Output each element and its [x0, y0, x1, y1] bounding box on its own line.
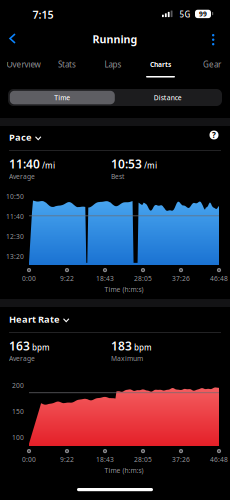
staticText: 9:22	[60, 455, 74, 464]
button[interactable]: Overview	[0, 58, 46, 78]
staticText: 0:00	[22, 455, 36, 464]
staticText: 10:53	[111, 156, 142, 172]
button[interactable]: Heart Rate	[9, 313, 69, 325]
button[interactable]: Stats	[44, 58, 90, 78]
staticText: /mi	[144, 160, 157, 171]
staticText: Average	[9, 172, 35, 181]
staticText: 100	[12, 433, 24, 442]
staticText: Maximum	[111, 354, 143, 363]
staticText: 10:50	[6, 192, 24, 201]
staticText: bpm	[32, 342, 50, 353]
staticText: Overview	[6, 59, 40, 70]
staticText: 18:43	[96, 274, 114, 283]
button[interactable]: Time	[10, 91, 115, 104]
staticText: Time (h:m:s)	[104, 466, 143, 475]
button[interactable]: Back	[0, 29, 23, 48]
staticText: bpm	[134, 342, 152, 353]
staticText: Time	[54, 93, 70, 102]
staticText: Heart Rate	[9, 313, 60, 325]
staticText: 99	[199, 9, 207, 18]
staticText: Best	[111, 172, 124, 181]
staticText: Pace	[9, 131, 32, 143]
staticText: 37:26	[172, 274, 190, 283]
staticText: 11:40	[9, 156, 40, 172]
staticText: 150	[12, 407, 24, 416]
staticText: 12:30	[6, 232, 24, 241]
button[interactable]: Charts	[137, 58, 183, 78]
staticText: 200	[12, 381, 24, 390]
staticText: Running	[92, 32, 137, 46]
button[interactable]: Gear	[189, 58, 230, 78]
button[interactable]: Pace	[9, 131, 41, 143]
staticText: 28:05	[134, 455, 152, 464]
staticText: 46:48	[210, 274, 228, 283]
staticText: 183	[111, 338, 132, 354]
staticText: 163	[9, 338, 30, 354]
button[interactable]: About this chart	[207, 128, 221, 142]
staticText: 9:22	[60, 274, 74, 283]
staticText: 13:20	[6, 252, 24, 261]
staticText: Time (h:m:s)	[104, 285, 143, 294]
staticText: Laps	[104, 59, 121, 70]
staticText: 7:15	[32, 7, 53, 22]
staticText: Distance	[154, 93, 182, 102]
button[interactable]: Laps	[90, 58, 136, 78]
staticText: 5G	[179, 9, 190, 20]
button[interactable]: Distance	[115, 91, 220, 104]
button[interactable]: More options	[203, 29, 223, 50]
staticText: 18:43	[96, 455, 114, 464]
staticText: /mi	[42, 160, 55, 171]
staticText: ?	[212, 130, 216, 140]
staticText: 0:00	[22, 274, 36, 283]
staticText: Charts	[150, 60, 171, 69]
staticText: 37:26	[172, 455, 190, 464]
staticText: Stats	[58, 59, 76, 70]
staticText: 46:48	[210, 455, 228, 464]
staticText: 28:05	[134, 274, 152, 283]
staticText: 11:40	[6, 212, 24, 221]
staticText: Gear	[203, 59, 221, 70]
staticText: Average	[9, 354, 35, 363]
